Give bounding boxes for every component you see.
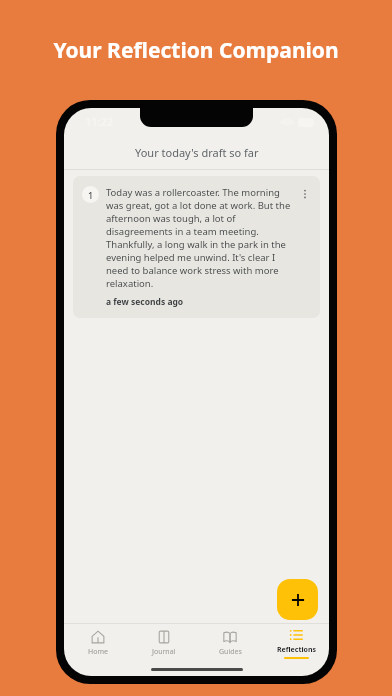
button[interactable]: Home (64, 630, 131, 657)
staticText: 1 (88, 189, 94, 201)
staticText: Reflections (277, 645, 316, 655)
button[interactable]: Journal (131, 630, 197, 657)
staticText: Your today's draft so far (135, 145, 259, 160)
staticText: a few seconds ago (106, 296, 184, 308)
button[interactable]: Guides (197, 630, 263, 657)
button[interactable]: More options (297, 186, 313, 202)
button[interactable]: Reflections (263, 628, 329, 659)
staticText: Journal (152, 647, 176, 657)
staticText: Your Reflection Companion (53, 36, 339, 65)
button[interactable]: 1 (73, 176, 320, 318)
staticText: Today was a rollercoaster. The morning w… (106, 186, 293, 290)
staticText: Home (88, 647, 108, 657)
staticText: Guides (219, 647, 242, 657)
button[interactable]: Add reflection (277, 579, 318, 620)
